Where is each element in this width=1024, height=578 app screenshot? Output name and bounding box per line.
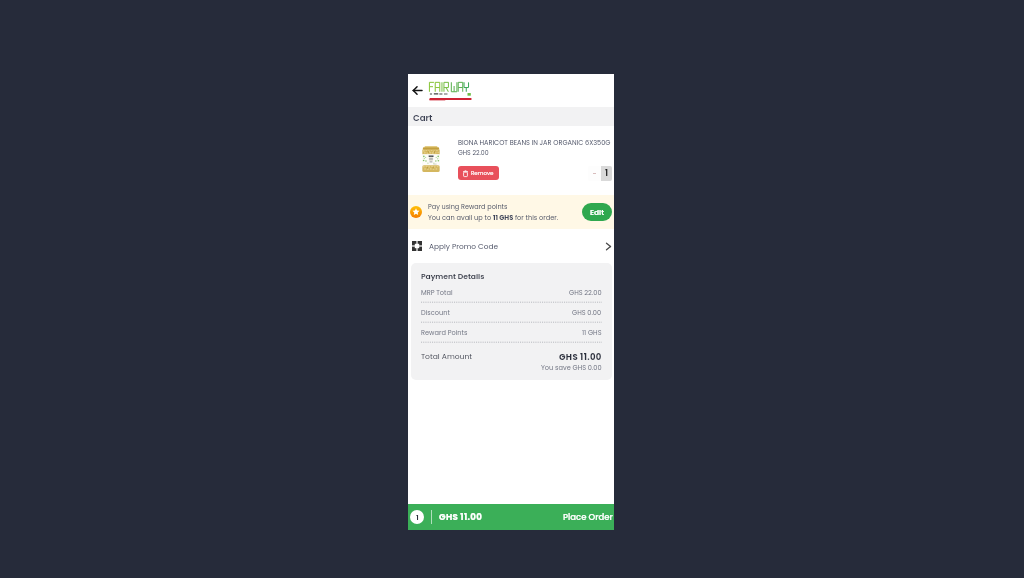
staticText: BIONA HARICOT BEANS IN JAR ORGANIC 6X350…	[458, 138, 611, 147]
button[interactable]: Decrease quantity	[588, 166, 601, 181]
staticText: 11 GHS	[582, 328, 602, 337]
button[interactable]: Edit	[582, 203, 612, 221]
button[interactable]: Apply Promo Code	[408, 229, 614, 263]
staticText: 1	[605, 168, 609, 179]
button[interactable]: Back	[409, 82, 426, 99]
staticText: GHS 11.00	[439, 511, 483, 523]
button[interactable]: Remove	[458, 166, 499, 180]
staticText: You save GHS 0.00	[541, 363, 602, 372]
button[interactable]: Place Order	[559, 507, 614, 527]
staticText: GHS 0.00	[572, 308, 602, 317]
staticText: GHS 22.00	[569, 288, 602, 297]
staticText: Cart	[413, 112, 433, 124]
staticText: GHS 11.00	[559, 351, 602, 363]
staticText: Reward Points	[421, 328, 468, 337]
staticText: GHS 22.00	[458, 148, 489, 157]
button[interactable]: Items count 1	[410, 510, 424, 524]
staticText: Payment Details	[421, 271, 485, 282]
staticText: Edit	[590, 207, 605, 217]
staticText: Pay using Reward points	[428, 202, 508, 211]
staticText: 1	[416, 512, 419, 522]
button[interactable]: Quantity 1	[601, 166, 612, 181]
staticText: Discount	[421, 308, 450, 317]
staticText: Place Order	[563, 511, 613, 523]
staticText: Remove	[471, 169, 494, 177]
staticText: Apply Promo Code	[429, 241, 499, 251]
staticText: You can avail up to 11 GHS for this orde…	[428, 213, 559, 222]
staticText: MRP Total	[421, 288, 453, 297]
staticText: Total Amount	[421, 351, 473, 362]
